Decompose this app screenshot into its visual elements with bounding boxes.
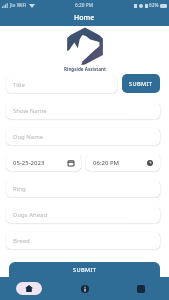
button[interactable]: Dog Name <box>6 128 160 145</box>
button[interactable]: Dogs Ahead <box>6 206 160 223</box>
button[interactable]: Show Name <box>6 102 160 119</box>
staticText: 6:20 PM <box>75 2 94 9</box>
button[interactable]: SUBMIT <box>9 262 160 278</box>
staticText: Ring <box>13 185 26 193</box>
staticText: Home <box>74 13 95 23</box>
button[interactable]: 05-25-2023 <box>6 154 81 171</box>
button[interactable]: Information <box>57 277 113 300</box>
button[interactable]: Breed <box>6 232 160 249</box>
staticText: Title <box>13 81 25 89</box>
button[interactable]: Gallery <box>113 277 169 300</box>
staticText: Breed <box>13 237 30 245</box>
staticText: Dog Name <box>13 133 44 141</box>
staticText: SUBMIT <box>73 266 97 274</box>
staticText: Ringside Assistant <box>64 66 106 72</box>
staticText: Dogs Ahead <box>13 211 48 219</box>
button[interactable]: SUBMIT <box>122 74 160 93</box>
staticText: 06:20 PM <box>93 159 120 167</box>
staticText: Jio WiFi <box>10 2 27 9</box>
staticText: SUBMIT <box>129 80 153 88</box>
staticText: 62% <box>149 2 159 9</box>
button[interactable]: Home <box>0 277 57 300</box>
button[interactable]: Ring <box>6 180 160 197</box>
button[interactable]: 06:20 PM <box>86 154 160 171</box>
staticText: 05-25-2023 <box>13 159 45 167</box>
button[interactable]: Title <box>6 76 117 93</box>
staticText: Show Name <box>13 107 47 115</box>
